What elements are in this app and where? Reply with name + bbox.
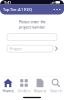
button[interactable]: Reports: [32, 79, 48, 93]
button[interactable]: Project: [7, 45, 53, 52]
button[interactable]: Search: [48, 79, 64, 93]
staticText: Reports: [33, 88, 46, 93]
button[interactable]: Home: [0, 79, 16, 93]
staticText: Please enter the project number: [18, 19, 45, 30]
staticText: Project: [9, 46, 21, 51]
button[interactable]: Next: [53, 45, 60, 52]
button[interactable]: More options: [52, 5, 61, 14]
staticText: TopTier-A1 REQ: [3, 7, 32, 12]
staticText: Orders: [17, 88, 30, 93]
staticText: Home: [2, 88, 13, 93]
staticText: Search: [50, 88, 62, 93]
button[interactable]: Orders: [16, 79, 32, 93]
staticText: 9:41: [4, 0, 11, 5]
